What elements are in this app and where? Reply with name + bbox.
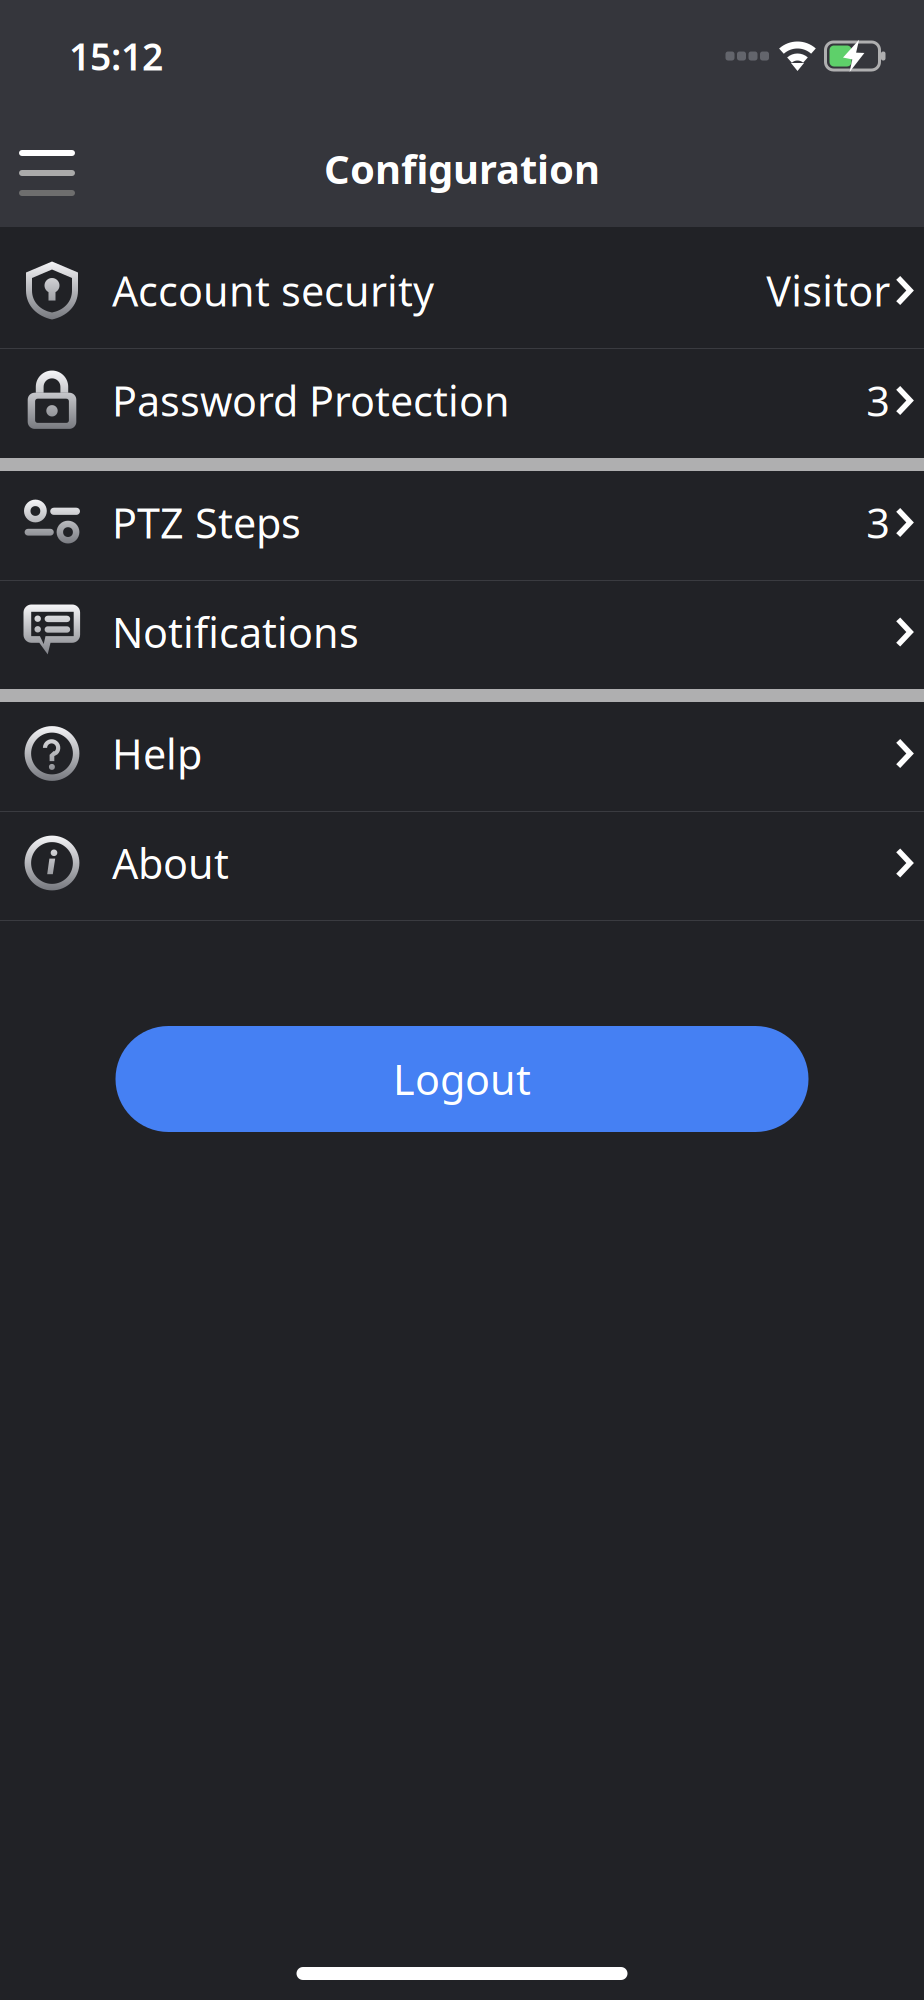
staticText: PTZ Steps (112, 495, 301, 550)
button[interactable]: Help (0, 702, 924, 811)
staticText: 15:12 (69, 31, 163, 81)
staticText: Configuration (324, 142, 600, 195)
button[interactable]: Password Protection (0, 349, 924, 458)
button[interactable]: Menu (0, 123, 94, 214)
staticText: 3 (866, 373, 890, 428)
staticText: About (112, 836, 229, 890)
staticText: Account security (112, 263, 434, 318)
button[interactable]: About (0, 812, 924, 920)
staticText: Visitor (766, 263, 890, 318)
staticText: Logout (393, 1052, 531, 1106)
button[interactable]: Account security (0, 239, 924, 348)
staticText: Help (112, 726, 202, 781)
staticText: Notifications (112, 605, 359, 659)
staticText: Password Protection (112, 373, 510, 428)
button[interactable]: Logout (115, 1026, 808, 1132)
staticText: 3 (866, 495, 890, 550)
button[interactable]: Notifications (0, 581, 924, 689)
button[interactable]: PTZ Steps (0, 471, 924, 580)
